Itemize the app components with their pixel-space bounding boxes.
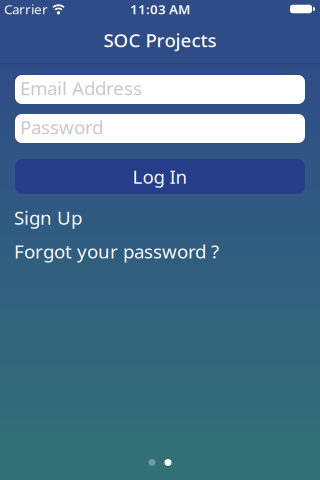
staticText: SOC Projects — [103, 28, 216, 52]
button[interactable]: Password — [15, 114, 305, 143]
staticText: Password — [20, 115, 103, 139]
button[interactable] — [148, 459, 171, 466]
staticText: Log In — [132, 164, 187, 189]
button[interactable]: Sign Up — [14, 205, 82, 230]
staticText: Email Address — [20, 76, 142, 100]
staticText: Carrier — [4, 0, 48, 18]
button[interactable]: Email Address — [15, 75, 305, 104]
button[interactable]: Forgot your password ? — [14, 239, 219, 264]
staticText: Forgot your password ? — [14, 239, 219, 264]
button[interactable]: Log In — [15, 159, 305, 194]
staticText: 11:03 AM — [130, 0, 190, 18]
staticText: Sign Up — [14, 205, 82, 230]
